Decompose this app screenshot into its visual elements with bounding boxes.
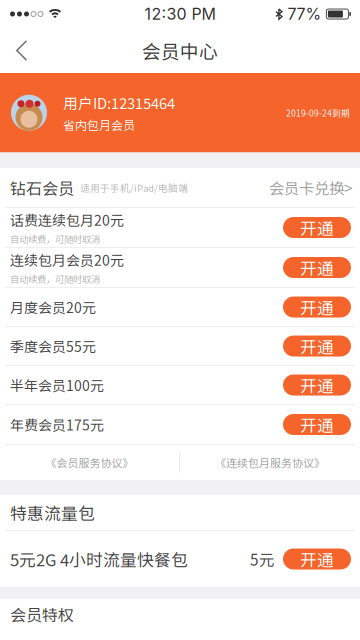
button[interactable]: 月度会员20元 <box>0 288 360 326</box>
staticText: 话费连续包月20元 <box>10 210 124 230</box>
button[interactable]: 连续包月会员20元 <box>0 248 360 287</box>
staticText: 5元 <box>250 548 274 570</box>
staticText: 77% <box>287 4 321 24</box>
staticText: 适用于手机/iPad/电脑端 <box>80 180 188 194</box>
staticText: 2019-09-24到期 <box>286 106 350 119</box>
button[interactable]: 5元2G 4小时流量快餐包 <box>0 531 360 587</box>
staticText: 月度会员20元 <box>10 297 96 317</box>
staticText: 季度会员55元 <box>10 336 96 356</box>
staticText: 半年会员100元 <box>10 375 104 395</box>
button[interactable]: 话费连续包月20元 <box>0 208 360 247</box>
staticText: 特惠流量包 <box>10 500 95 524</box>
staticText: 用户ID:12315464 <box>63 92 175 113</box>
staticText: 开通 <box>300 547 334 571</box>
button[interactable]: 开通 <box>283 217 351 238</box>
button[interactable]: 开通 <box>283 257 351 278</box>
staticText: 开通 <box>300 412 334 436</box>
button[interactable]: 开通 <box>283 548 351 569</box>
staticText: 年费会员175元 <box>10 414 104 435</box>
button[interactable]: 半年会员100元 <box>0 366 360 404</box>
staticText: 会员卡兑换> <box>269 176 353 199</box>
staticText: 钻石会员 <box>10 176 74 199</box>
button[interactable]: 开通 <box>283 374 351 395</box>
staticText: 12:30 PM <box>144 4 215 24</box>
staticText: 开通 <box>300 255 334 279</box>
button[interactable]: 会员卡兑换> <box>261 168 360 207</box>
button[interactable]: Back <box>0 28 44 73</box>
staticText: 《连续包月服务协议》 <box>215 455 325 470</box>
staticText: 连续包月会员20元 <box>10 250 124 270</box>
staticText: 《会员服务协议》 <box>45 455 133 470</box>
button[interactable]: 年费会员175元 <box>0 405 360 444</box>
staticText: 会员特权 <box>10 602 74 626</box>
button[interactable]: 开通 <box>283 296 351 317</box>
staticText: 5元2G 4小时流量快餐包 <box>10 547 188 571</box>
button[interactable]: 《连续包月服务协议》 <box>180 445 360 480</box>
staticText: 开通 <box>300 215 334 239</box>
button[interactable]: 开通 <box>283 414 351 435</box>
staticText: 开通 <box>300 334 334 358</box>
staticText: 省内包月会员 <box>63 116 135 134</box>
staticText: 开通 <box>300 373 334 397</box>
staticText: 自动续费，可随时取消 <box>10 232 100 245</box>
button[interactable]: 《会员服务协议》 <box>0 445 179 480</box>
button[interactable]: 开通 <box>283 335 351 356</box>
button[interactable]: 季度会员55元 <box>0 327 360 365</box>
staticText: 自动续费，可随时取消 <box>10 272 100 285</box>
staticText: 开通 <box>300 295 334 319</box>
staticText: 会员中心 <box>142 37 218 64</box>
